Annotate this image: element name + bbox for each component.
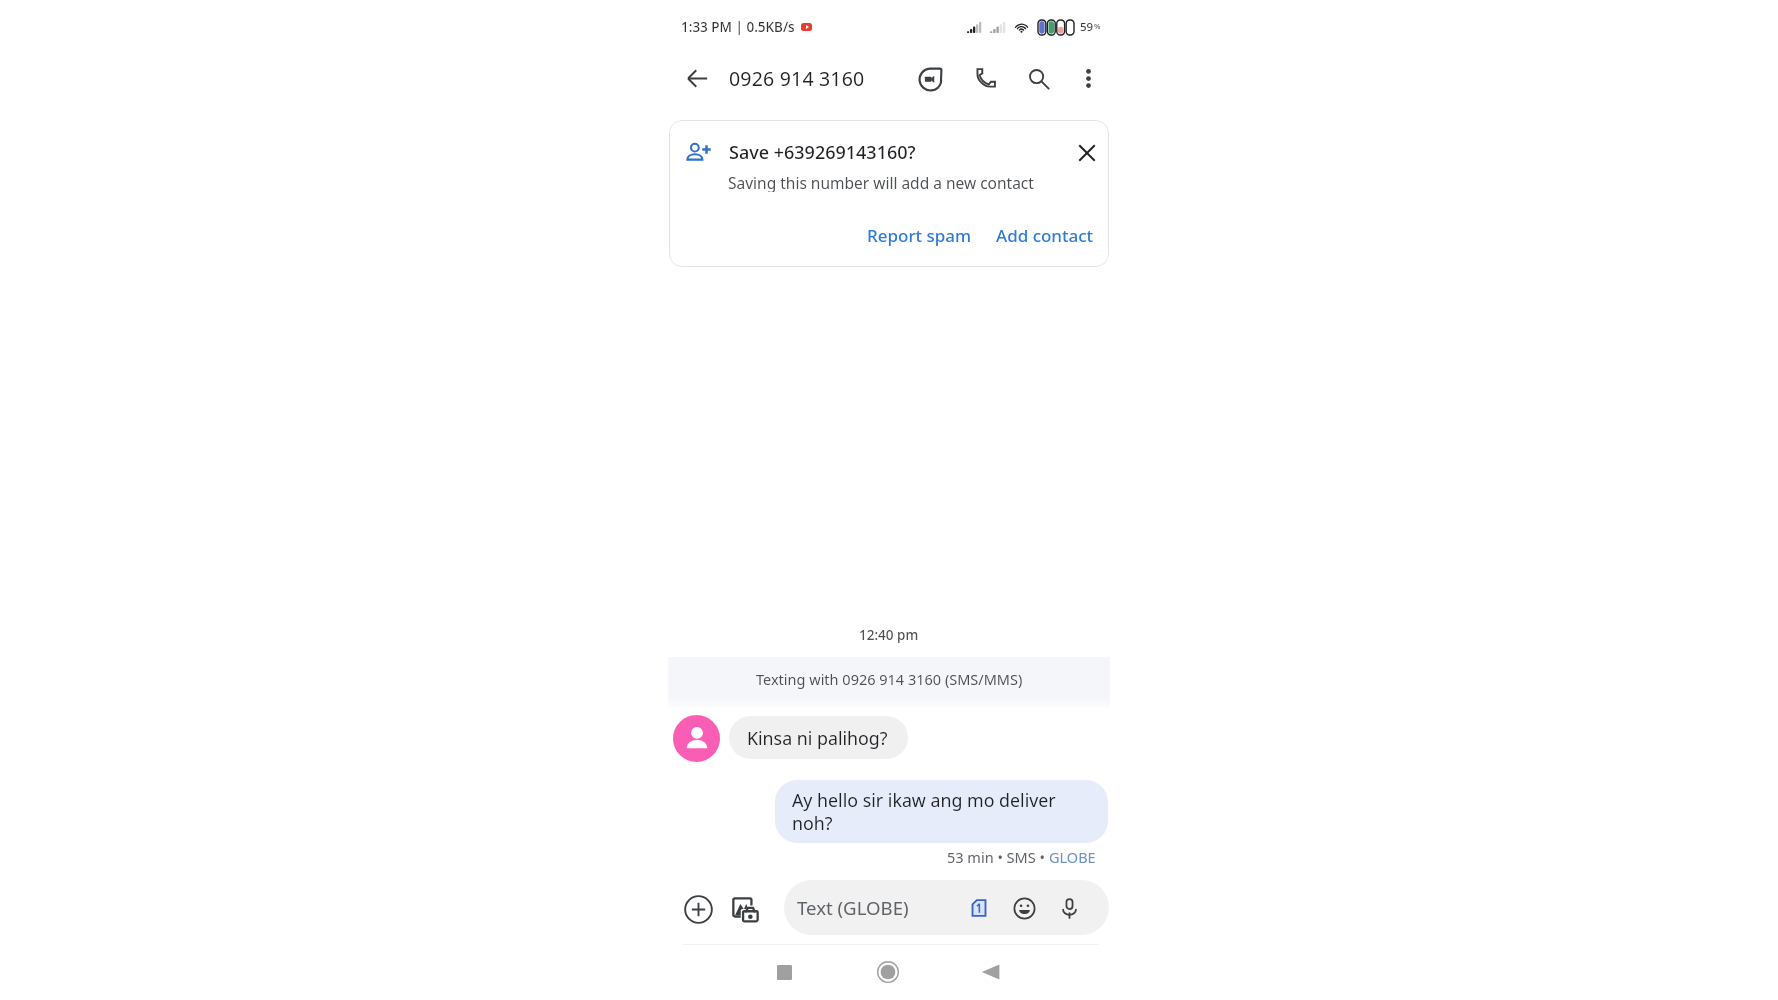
staticText: 0926 914 3160 <box>729 65 865 92</box>
button[interactable]: Call <box>968 61 1003 96</box>
button[interactable]: Voice message <box>1056 895 1082 921</box>
button[interactable]: More options <box>1071 61 1106 96</box>
button[interactable]: Gallery <box>727 891 763 927</box>
staticText: % <box>1094 21 1101 31</box>
button[interactable]: Kinsa ni palihog? <box>729 716 908 759</box>
button[interactable]: SIM <box>966 895 992 921</box>
button[interactable]: Ay hello sir ikaw ang mo deliver noh? <box>775 780 1108 843</box>
staticText: 1:33 PM | 0.5KB/s <box>681 18 795 36</box>
staticText: GLOBE <box>1049 847 1096 865</box>
button[interactable]: Back <box>969 950 1013 994</box>
staticText: Text (GLOBE) <box>797 895 909 920</box>
button[interactable]: Text (GLOBE) <box>784 880 1109 935</box>
staticText: Texting with 0926 914 3160 (SMS/MMS) <box>756 669 1023 689</box>
button[interactable]: Recents <box>762 950 806 994</box>
staticText: 53 min • SMS • <box>947 847 1049 865</box>
staticText: Report spam <box>867 224 972 247</box>
staticText: Kinsa ni palihog? <box>747 726 888 750</box>
staticText: 59 <box>1080 19 1094 35</box>
button[interactable]: Add attachment <box>680 891 716 927</box>
button[interactable]: Back <box>680 61 715 96</box>
staticText: 12:40 pm <box>859 626 919 644</box>
staticText: Save +639269143160? <box>729 140 916 162</box>
button[interactable]: Home <box>866 950 910 994</box>
button[interactable]: Report spam <box>862 219 977 252</box>
button[interactable]: Add contact <box>991 219 1099 252</box>
button[interactable]: Search <box>1021 61 1056 96</box>
button[interactable]: Dismiss <box>1072 138 1102 168</box>
staticText: Add contact <box>996 224 1094 247</box>
button[interactable]: Emoji <box>1011 895 1037 921</box>
button[interactable]: Video call <box>913 61 948 96</box>
staticText: Saving this number will add a new contac… <box>728 172 1034 192</box>
staticText: Ay hello sir ikaw ang mo deliver noh? <box>792 788 1094 835</box>
